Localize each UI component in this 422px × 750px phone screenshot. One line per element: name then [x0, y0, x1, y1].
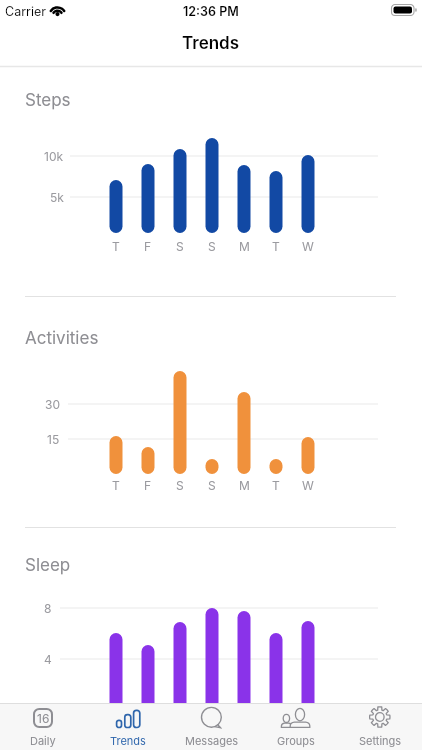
staticText: W — [302, 239, 314, 254]
staticText: T — [112, 478, 120, 493]
staticText: 5k — [50, 190, 64, 205]
staticText: 12:36 PM — [183, 4, 239, 19]
staticText: Trends — [110, 734, 146, 747]
staticText: Carrier — [5, 4, 46, 19]
staticText: 30 — [45, 397, 60, 412]
staticText: T — [272, 239, 280, 254]
button[interactable]: 16 — [0, 703, 85, 750]
staticText: F — [144, 478, 152, 493]
staticText: S — [176, 239, 184, 254]
staticText: S — [208, 478, 216, 493]
staticText: Steps — [25, 90, 71, 111]
staticText: F — [144, 239, 152, 254]
button[interactable]: Trends — [85, 703, 170, 750]
staticText: W — [302, 478, 314, 493]
staticText: 15 — [47, 432, 60, 447]
staticText: Activities — [25, 328, 99, 349]
staticText: M — [239, 239, 250, 254]
staticText: Trends — [182, 33, 240, 54]
staticText: 16 — [37, 711, 50, 726]
staticText: Groups — [277, 734, 315, 747]
staticText: S — [208, 239, 216, 254]
staticText: 4 — [44, 652, 52, 667]
button[interactable]: Groups — [254, 703, 338, 750]
button[interactable]: Messages — [170, 703, 254, 750]
staticText: M — [239, 478, 250, 493]
staticText: Messages — [185, 734, 239, 747]
staticText: S — [176, 478, 184, 493]
staticText: 10k — [44, 149, 64, 164]
staticText: Settings — [359, 734, 402, 747]
staticText: 8 — [44, 601, 52, 616]
staticText: T — [112, 239, 120, 254]
staticText: Sleep — [25, 555, 71, 576]
staticText: Daily — [30, 734, 56, 747]
button[interactable]: Settings — [338, 703, 422, 750]
staticText: T — [272, 478, 280, 493]
